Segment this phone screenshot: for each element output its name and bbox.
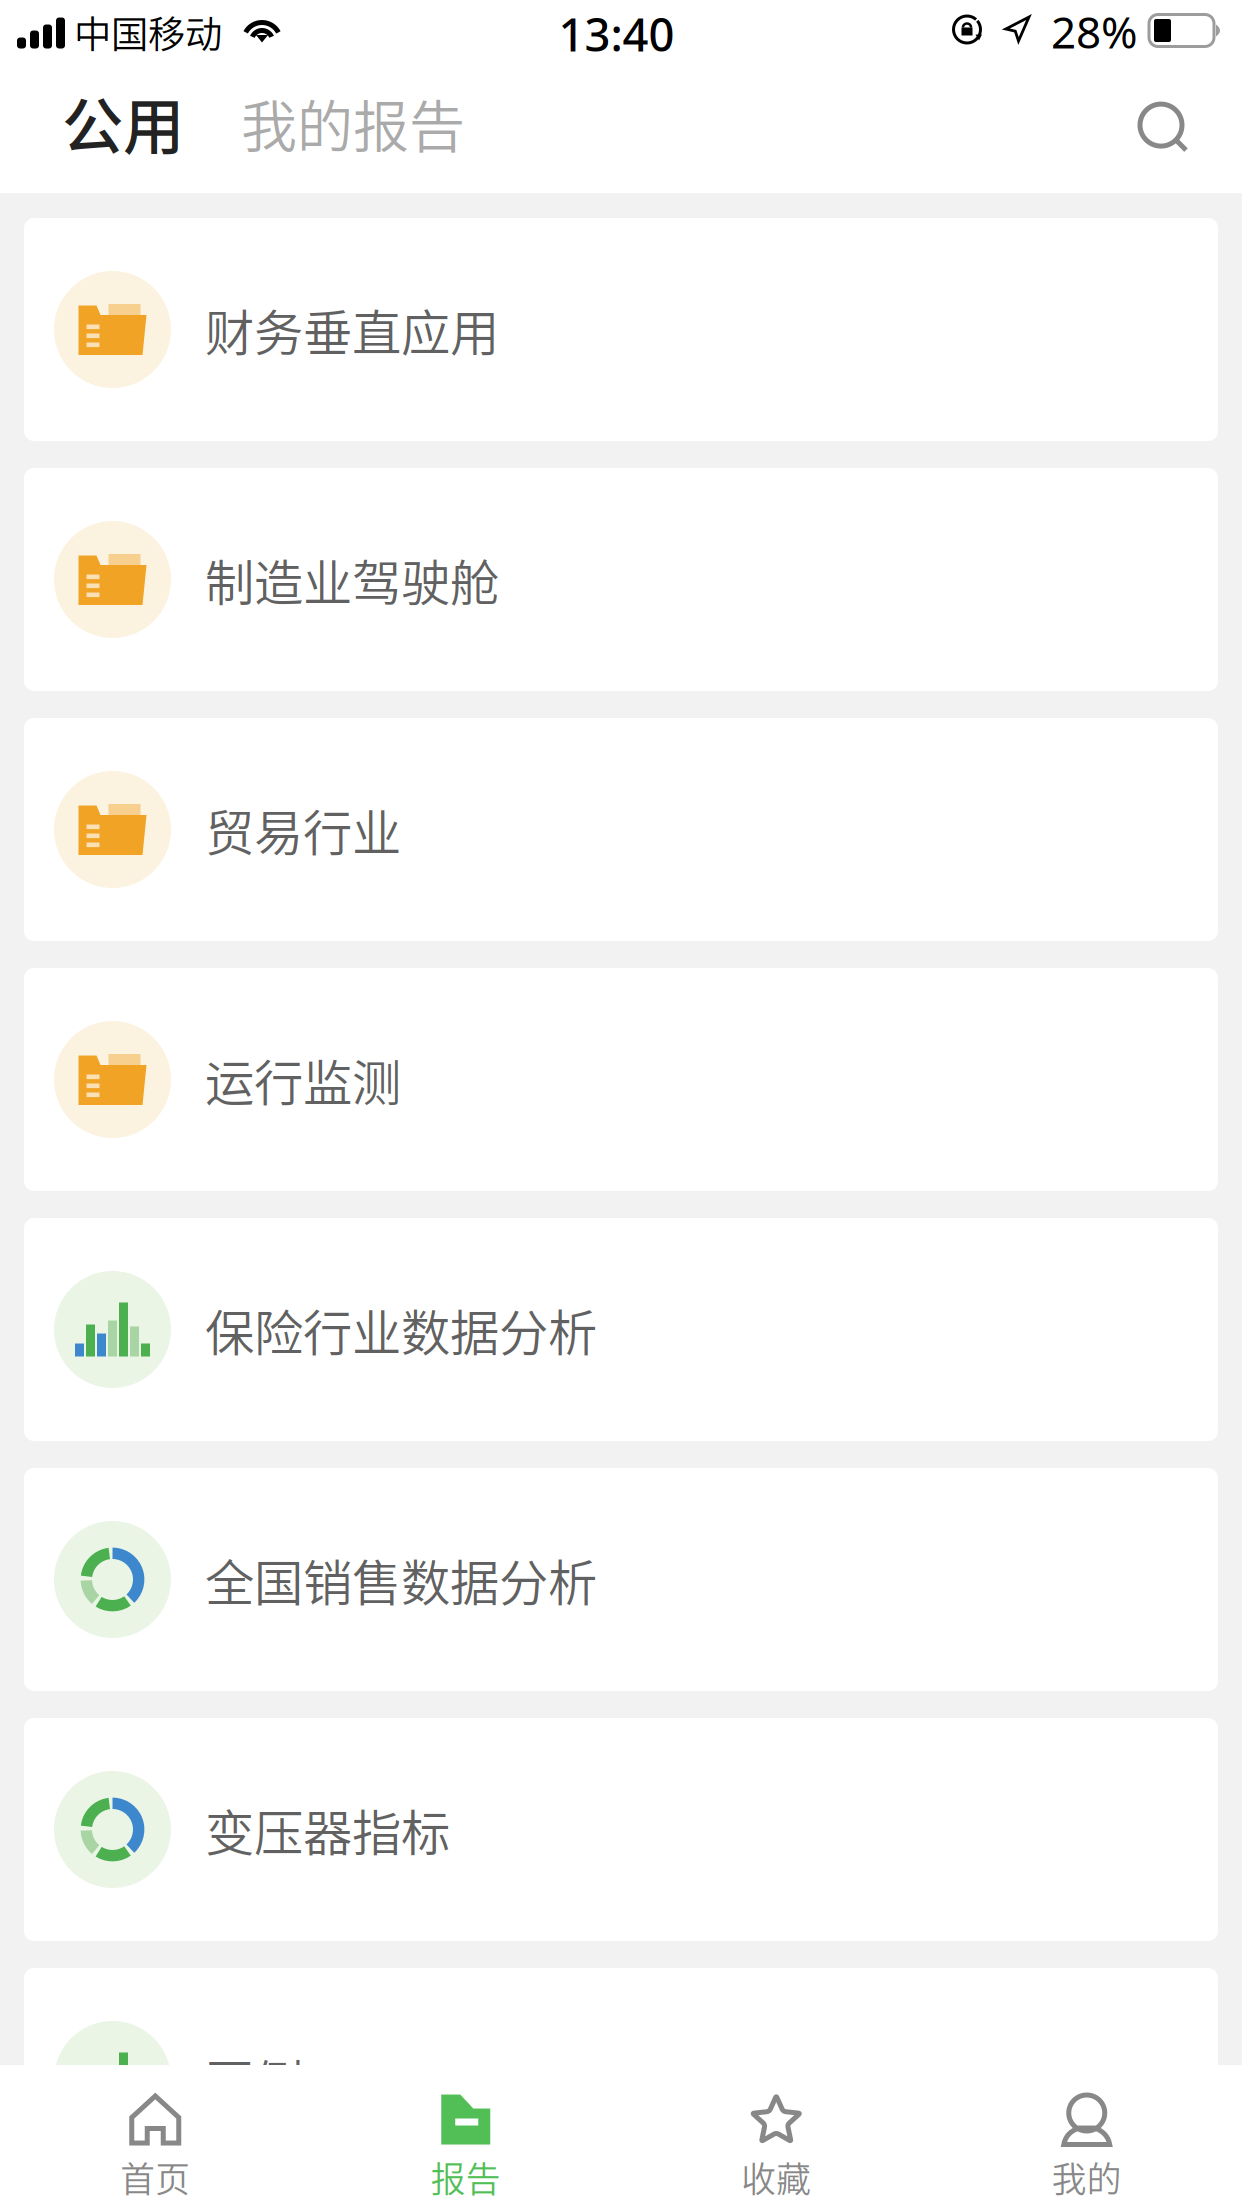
staticText: 中国移动 [74, 5, 222, 59]
button[interactable]: 首页 [0, 2065, 310, 2208]
button[interactable]: 贸易行业 [24, 718, 1218, 941]
button[interactable]: Search [1120, 68, 1242, 185]
staticText: 13:40 [558, 4, 674, 64]
button[interactable]: 公用 [0, 68, 184, 201]
button[interactable]: 报告 [310, 2065, 621, 2208]
staticText: 运行监测 [205, 1044, 401, 1115]
button[interactable]: 财务垂直应用 [24, 218, 1218, 441]
staticText: 图例 [205, 2044, 303, 2115]
staticText: 贸易行业 [205, 794, 401, 865]
button[interactable]: 图例 [24, 1968, 1218, 2191]
staticText: 公用 [62, 78, 184, 167]
staticText: 全国销售数据分析 [205, 1544, 597, 1615]
staticText: 保险行业数据分析 [205, 1294, 597, 1365]
staticText: 报告 [431, 2152, 501, 2202]
staticText: 我的 [1052, 2152, 1122, 2202]
staticText: 28% [1051, 2, 1138, 61]
button[interactable]: 全国销售数据分析 [24, 1468, 1218, 1691]
button[interactable]: 变压器指标 [24, 1718, 1218, 1941]
staticText: 首页 [120, 2152, 190, 2202]
button[interactable]: 收藏 [621, 2065, 931, 2208]
staticText: 我的报告 [241, 82, 465, 163]
button[interactable]: 保险行业数据分析 [24, 1218, 1218, 1441]
staticText: 变压器指标 [205, 1794, 450, 1865]
button[interactable]: 我的报告 [184, 68, 465, 197]
staticText: 财务垂直应用 [205, 294, 499, 365]
button[interactable]: 运行监测 [24, 968, 1218, 1191]
staticText: 收藏 [741, 2152, 811, 2202]
staticText: 制造业驾驶舱 [205, 544, 499, 615]
button[interactable]: 制造业驾驶舱 [24, 468, 1218, 691]
button[interactable]: 我的 [931, 2065, 1242, 2208]
